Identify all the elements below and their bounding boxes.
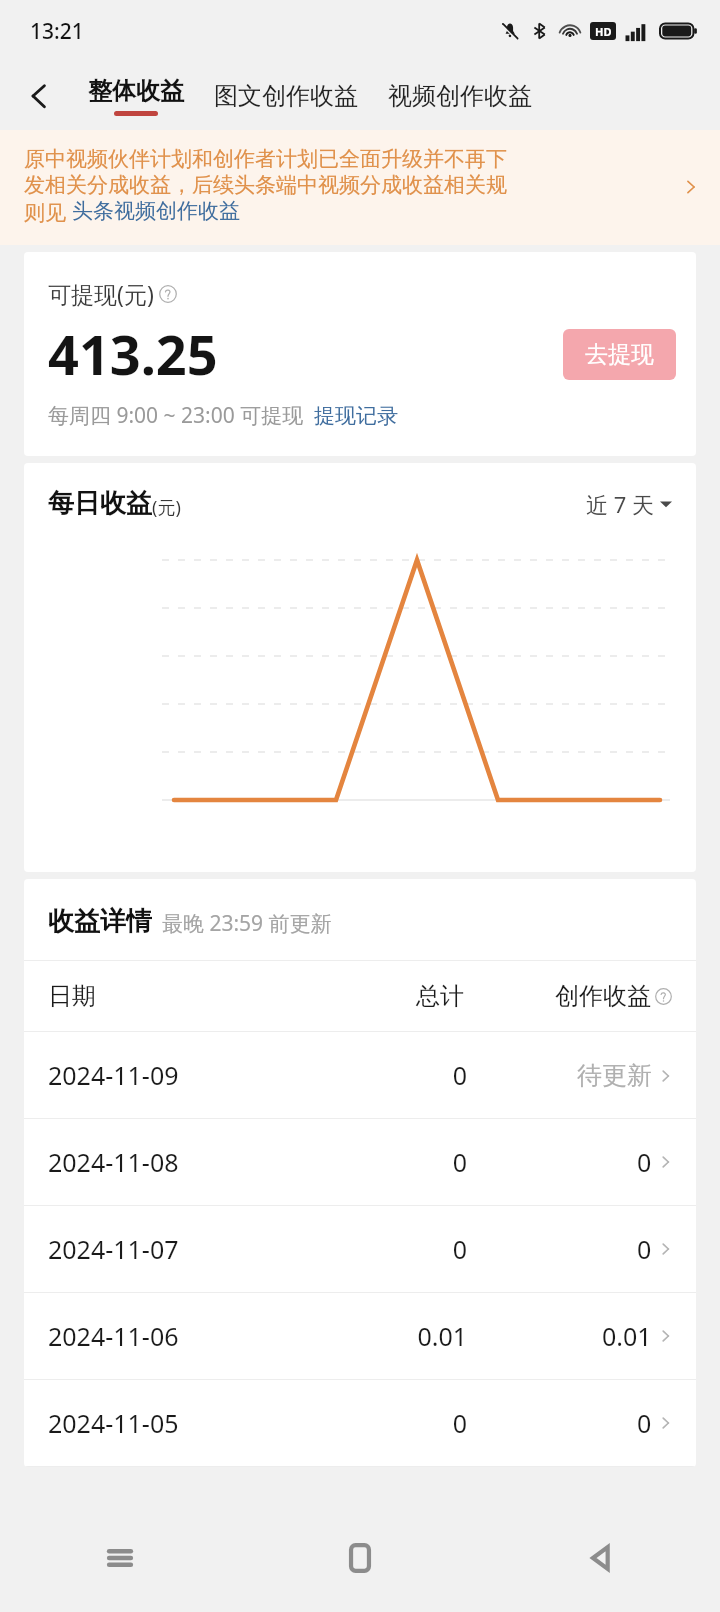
staticText: 视频创作收益 bbox=[388, 81, 532, 111]
staticText: 0 bbox=[258, 1058, 467, 1092]
staticText: 413.25 bbox=[48, 317, 218, 391]
staticText: 0.01 bbox=[258, 1319, 467, 1353]
staticText: 待更新 bbox=[577, 1060, 652, 1091]
staticText: 近 7 天 bbox=[586, 489, 655, 519]
staticText: 原中视频伙伴计划和创作者计划已全面升级并不再下 bbox=[24, 146, 507, 172]
staticText: 2024-11-07 bbox=[48, 1232, 258, 1266]
staticText: 0 bbox=[258, 1406, 467, 1440]
staticText: 0 bbox=[258, 1145, 467, 1179]
button[interactable]: 原中视频伙伴计划和创作者计划已全面升级并不再下 bbox=[0, 130, 720, 245]
button[interactable]: Recents bbox=[0, 1504, 240, 1612]
button[interactable]: 2024-11-08 bbox=[24, 1119, 696, 1205]
staticText: 总计 bbox=[256, 981, 464, 1011]
staticText: 0 bbox=[637, 1406, 652, 1440]
button[interactable]: 2024-11-06 bbox=[24, 1293, 696, 1379]
staticText: 2024-11-08 bbox=[48, 1145, 258, 1179]
staticText: 0 bbox=[637, 1145, 652, 1179]
button[interactable]: 近 7 天 bbox=[586, 489, 672, 519]
staticText: 则见 bbox=[24, 198, 72, 227]
staticText: 发相关分成收益，后续头条端中视频分成收益相关规 bbox=[24, 172, 507, 198]
staticText: 最晚 23:59 前更新 bbox=[162, 909, 332, 938]
button[interactable]: 整体收益 bbox=[80, 72, 192, 120]
staticText: (元) bbox=[152, 495, 181, 520]
staticText: 收益详情 bbox=[48, 905, 152, 938]
staticText: 可提现(元) bbox=[48, 278, 154, 309]
staticText: 每日收益 bbox=[48, 487, 152, 520]
staticText: 每周四 9:00 ~ 23:00 可提现 bbox=[48, 401, 304, 430]
staticText: 创作收益 bbox=[555, 981, 651, 1011]
button[interactable]: 2024-11-05 bbox=[24, 1380, 696, 1466]
button[interactable]: Back bbox=[14, 71, 64, 121]
button[interactable]: 视频创作收益 bbox=[380, 77, 540, 115]
staticText: 2024-11-06 bbox=[48, 1319, 258, 1353]
staticText: 0 bbox=[258, 1232, 467, 1266]
staticText: 头条视频创作收益 bbox=[72, 198, 240, 224]
button[interactable]: Home bbox=[240, 1504, 480, 1612]
button[interactable]: 2024-11-07 bbox=[24, 1206, 696, 1292]
staticText: HD bbox=[595, 24, 612, 39]
staticText: 2024-11-09 bbox=[48, 1058, 258, 1092]
button[interactable]: 2024-11-09 bbox=[24, 1032, 696, 1118]
staticText: 去提现 bbox=[585, 340, 654, 369]
staticText: 日期 bbox=[48, 981, 256, 1011]
button[interactable]: 图文创作收益 bbox=[206, 77, 366, 115]
button[interactable]: 提现记录 bbox=[314, 403, 398, 429]
staticText: 0.01 bbox=[602, 1319, 652, 1353]
staticText: 整体收益 bbox=[88, 76, 184, 106]
staticText: 提现记录 bbox=[314, 403, 398, 429]
staticText: 2024-11-05 bbox=[48, 1406, 258, 1440]
button[interactable]: 去提现 bbox=[563, 329, 676, 380]
staticText: 13:21 bbox=[30, 17, 84, 46]
staticText: 0 bbox=[637, 1232, 652, 1266]
button[interactable]: Back bbox=[480, 1504, 720, 1612]
staticText: 图文创作收益 bbox=[214, 81, 358, 111]
